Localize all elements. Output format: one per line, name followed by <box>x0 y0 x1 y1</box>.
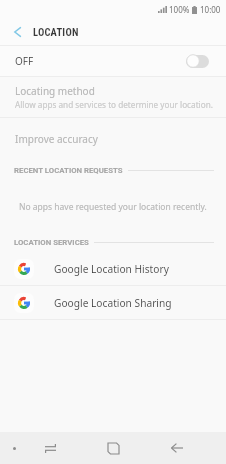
staticText: Improve accuracy <box>15 132 98 146</box>
staticText: No apps have requested your location rec… <box>19 201 207 213</box>
staticText: Allow apps and services to determine you… <box>15 99 213 110</box>
staticText: 100% <box>169 4 190 15</box>
button[interactable]: Google Location History <box>0 252 226 285</box>
staticText: LOCATION SERVICES <box>14 238 89 247</box>
staticText: Locating method <box>15 84 95 98</box>
staticText: Google Location Sharing <box>54 296 172 310</box>
staticText: OFF <box>15 54 34 68</box>
button[interactable]: Improve accuracy <box>0 118 226 159</box>
staticText: 10:00 <box>200 4 221 15</box>
staticText: LOCATION <box>33 26 79 38</box>
button[interactable]: Back <box>145 432 208 464</box>
button[interactable]: Navigate up <box>0 18 30 45</box>
button[interactable]: OFF <box>0 46 226 76</box>
staticText: Google Location History <box>54 262 169 276</box>
staticText: RECENT LOCATION REQUESTS <box>14 166 123 175</box>
button[interactable]: Locating method <box>0 77 226 117</box>
button[interactable]: Google Location Sharing <box>0 286 226 319</box>
button[interactable]: Home <box>82 432 145 464</box>
button[interactable]: Recent apps <box>18 432 82 464</box>
button[interactable]: Show keyboard <box>0 432 28 464</box>
